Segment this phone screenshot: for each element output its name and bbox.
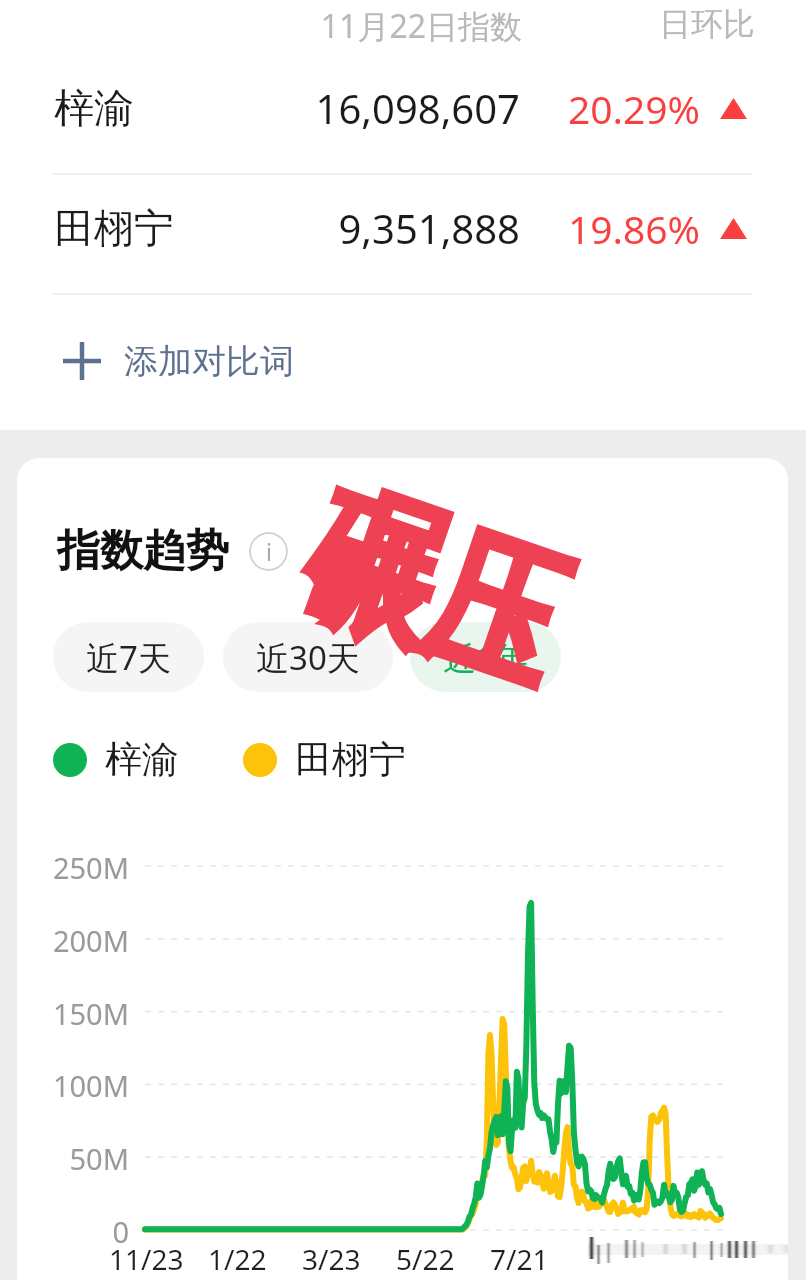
staticText: 近30天	[256, 635, 360, 680]
staticText: 7/21	[490, 1240, 549, 1278]
staticText: 近1年	[443, 635, 528, 680]
button[interactable]: 近30天	[223, 622, 393, 692]
staticText: 9,351,888	[280, 201, 520, 255]
staticText: 150M	[17, 994, 129, 1033]
staticText: 5/22	[396, 1240, 455, 1278]
staticText: 16,098,607	[280, 81, 520, 135]
staticText: 11/23	[109, 1240, 184, 1278]
staticText: 50M	[17, 1139, 129, 1178]
button[interactable]: 近7天	[53, 622, 204, 692]
button[interactable]: 添加对比词	[63, 315, 343, 407]
staticText: 20.29%	[540, 82, 700, 135]
staticText: 田栩宁	[295, 736, 406, 783]
staticText: 1/22	[208, 1240, 267, 1278]
button[interactable]: 田栩宁	[0, 182, 806, 274]
staticText: 添加对比词	[124, 340, 294, 383]
button[interactable]: 梓渝	[0, 62, 806, 154]
button[interactable]: 近1年	[410, 622, 561, 692]
staticText: 19.86%	[540, 202, 700, 255]
staticText: 碾压	[281, 458, 587, 727]
staticText: 指数趋势	[57, 524, 229, 578]
staticText: 近7天	[86, 635, 171, 680]
staticText: 梓渝	[105, 736, 179, 783]
staticText: i	[266, 536, 272, 567]
staticText: 200M	[17, 921, 129, 960]
staticText: 11月22日指数	[202, 4, 522, 48]
staticText: 0	[17, 1212, 129, 1251]
staticText: 日环比	[570, 4, 755, 44]
staticText: 梓渝	[54, 83, 134, 133]
staticText: 250M	[17, 848, 129, 887]
button[interactable]: 说明	[249, 532, 288, 571]
staticText: 田栩宁	[54, 203, 174, 253]
staticText: 3/23	[302, 1240, 361, 1278]
staticText: 100M	[17, 1066, 129, 1105]
